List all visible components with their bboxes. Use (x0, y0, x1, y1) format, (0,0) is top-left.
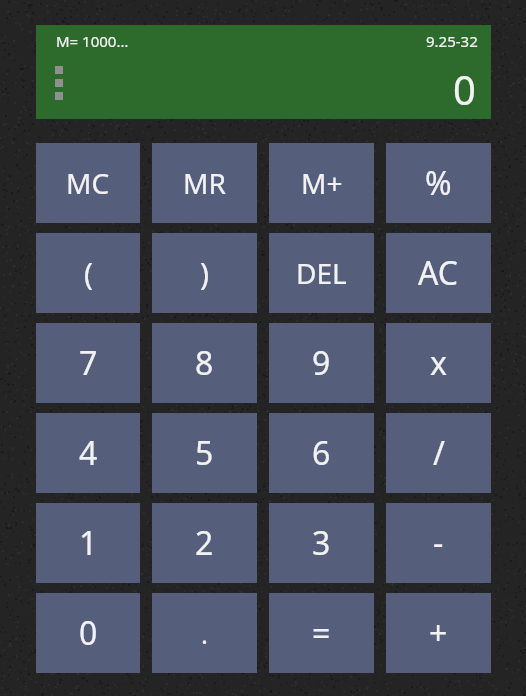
staticText: + (429, 611, 448, 655)
button[interactable]: M+ (269, 143, 374, 223)
staticText: 1 (79, 521, 98, 565)
staticText: 7 (79, 341, 98, 385)
staticText: 9 (312, 341, 331, 385)
staticText: M= 1000… (56, 31, 129, 51)
button[interactable]: % (386, 143, 491, 223)
staticText: 5 (195, 431, 214, 475)
button[interactable]: / (386, 413, 491, 493)
button[interactable]: = (269, 593, 374, 673)
button[interactable]: 0 (36, 593, 140, 673)
staticText: M+ (301, 164, 343, 202)
button[interactable]: x (386, 323, 491, 403)
staticText: % (425, 161, 452, 205)
button[interactable]: More options (55, 66, 63, 100)
button[interactable]: 5 (152, 413, 257, 493)
button[interactable]: 2 (152, 503, 257, 583)
button[interactable]: . (152, 593, 257, 673)
staticText: MR (183, 164, 226, 202)
button[interactable]: 4 (36, 413, 140, 493)
staticText: MC (66, 164, 110, 202)
staticText: - (433, 521, 444, 565)
button[interactable]: 8 (152, 323, 257, 403)
staticText: 8 (195, 341, 214, 385)
button[interactable]: ) (152, 233, 257, 313)
staticText: ) (200, 253, 209, 294)
button[interactable]: ( (36, 233, 140, 313)
staticText: 6 (312, 431, 331, 475)
button[interactable]: + (386, 593, 491, 673)
staticText: 2 (195, 521, 214, 565)
staticText: 0 (453, 62, 476, 116)
staticText: x (430, 341, 447, 385)
button[interactable]: 1 (36, 503, 140, 583)
staticText: ( (84, 253, 93, 294)
staticText: 3 (312, 521, 331, 565)
staticText: 9.25-32 (426, 31, 478, 51)
button[interactable]: 7 (36, 323, 140, 403)
staticText: DEL (296, 254, 347, 292)
staticText: 0 (79, 611, 98, 655)
button[interactable]: - (386, 503, 491, 583)
staticText: 4 (79, 431, 98, 475)
staticText: / (433, 431, 445, 475)
button[interactable]: 3 (269, 503, 374, 583)
button[interactable]: MC (36, 143, 140, 223)
button[interactable]: DEL (269, 233, 374, 313)
staticText: AC (418, 251, 459, 295)
button[interactable]: 9 (269, 323, 374, 403)
staticText: = (312, 611, 331, 655)
staticText: . (201, 616, 208, 651)
button[interactable]: MR (152, 143, 257, 223)
button[interactable]: AC (386, 233, 491, 313)
button[interactable]: 6 (269, 413, 374, 493)
